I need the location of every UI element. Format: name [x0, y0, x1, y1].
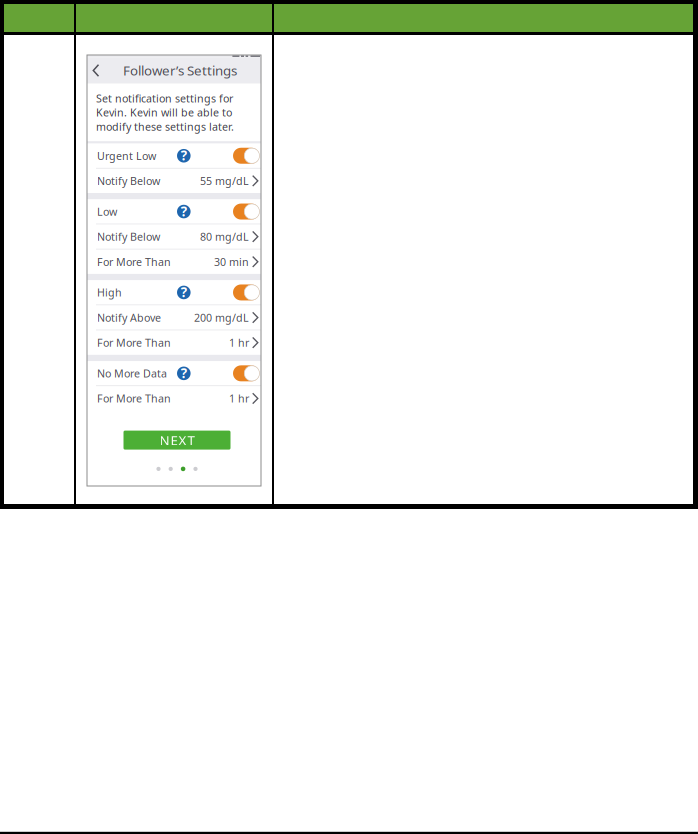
staticText: Notify Below	[97, 174, 160, 188]
staticText: For More Than	[97, 391, 171, 406]
button[interactable]: For More Than	[87, 250, 261, 274]
staticText: Follower’s Settings	[123, 62, 237, 79]
staticText: 1 hr	[229, 336, 249, 350]
button[interactable]: Toggle on	[233, 365, 259, 381]
button[interactable]: For More Than	[87, 386, 261, 411]
button[interactable]: Notify Below	[87, 169, 261, 193]
button[interactable]: Urgent Low	[87, 144, 261, 168]
button[interactable]: Toggle on	[233, 148, 259, 164]
button[interactable]: Notify Above	[87, 305, 261, 330]
button[interactable]: Low	[87, 199, 261, 224]
button[interactable]: Back	[87, 57, 113, 84]
staticText: 1 hr	[229, 391, 249, 406]
staticText: Notify Below	[97, 230, 160, 244]
button[interactable]: NEXT	[123, 431, 230, 450]
button[interactable]: Notify Below	[87, 224, 261, 249]
button[interactable]: Help	[177, 367, 191, 380]
button[interactable]: No More Data	[87, 361, 261, 385]
button[interactable]: Help	[177, 286, 191, 299]
button[interactable]: Toggle on	[233, 203, 259, 219]
staticText: 200 mg/dL	[194, 310, 249, 325]
staticText: 55 mg/dL	[200, 174, 249, 188]
staticText: ?	[181, 364, 187, 382]
staticText: Set notification settings for Kevin. Kev…	[96, 91, 234, 134]
button[interactable]: For More Than	[87, 330, 261, 355]
staticText: 30 min	[214, 255, 249, 269]
staticText: High	[97, 285, 122, 300]
staticText: Urgent Low	[97, 149, 156, 163]
staticText: Low	[97, 204, 117, 219]
staticText: No More Data	[97, 366, 167, 380]
button[interactable]: Toggle on	[233, 284, 259, 300]
staticText: For More Than	[97, 336, 171, 350]
button[interactable]: High	[87, 280, 261, 305]
staticText: ?	[181, 202, 187, 220]
button[interactable]: Help	[177, 149, 191, 162]
staticText: Notify Above	[97, 310, 161, 325]
staticText: ?	[181, 147, 187, 164]
staticText: ?	[181, 283, 187, 301]
staticText: For More Than	[97, 255, 171, 269]
button[interactable]: Help	[177, 205, 191, 218]
staticText: NEXT	[159, 431, 194, 449]
staticText: 80 mg/dL	[200, 230, 249, 244]
